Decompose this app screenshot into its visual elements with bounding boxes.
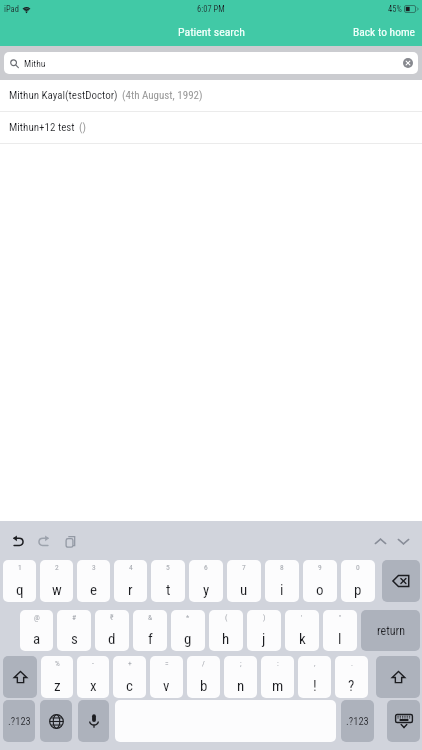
staticText: p <box>354 581 362 599</box>
staticText: Mithu <box>24 58 46 69</box>
staticText: 6:07 PM <box>197 4 225 14</box>
staticText: iPad <box>4 4 19 14</box>
staticText: # <box>72 613 77 622</box>
button[interactable]: ) <box>247 610 281 651</box>
staticText: () <box>79 121 86 134</box>
staticText: u <box>240 581 248 599</box>
staticText: ! <box>313 677 317 695</box>
staticText: 9 <box>318 563 322 572</box>
button[interactable]: Previous field <box>371 532 389 550</box>
staticText: + <box>128 659 132 668</box>
staticText: 2 <box>55 563 59 572</box>
button[interactable]: : <box>261 656 294 698</box>
staticText: ₹ <box>110 613 114 622</box>
button[interactable]: .?123 <box>3 700 35 742</box>
button[interactable]: 1 <box>3 560 36 602</box>
button[interactable]: - <box>77 656 109 698</box>
staticText: 7 <box>242 563 246 572</box>
staticText: Back to home <box>353 25 415 38</box>
button[interactable]: Clear search <box>403 58 413 68</box>
button[interactable]: 8 <box>265 560 299 602</box>
button[interactable]: + <box>113 656 146 698</box>
button[interactable]: 6 <box>189 560 223 602</box>
button[interactable]: " <box>323 610 357 651</box>
button[interactable]: ( <box>209 610 243 651</box>
staticText: r <box>128 581 133 599</box>
staticText: m <box>272 677 284 695</box>
staticText: s <box>71 630 78 648</box>
staticText: return <box>377 624 405 638</box>
staticText: 5 <box>166 563 170 572</box>
button[interactable]: 0 <box>341 560 375 602</box>
button[interactable]: 4 <box>114 560 147 602</box>
button[interactable]: 9 <box>303 560 337 602</box>
button[interactable]: , <box>298 656 331 698</box>
button[interactable]: Change keyboard language <box>40 700 72 742</box>
button[interactable]: @ <box>20 610 53 651</box>
button[interactable]: # <box>57 610 91 651</box>
button[interactable]: Mithun Kayal(testDoctor) <box>0 80 422 112</box>
button[interactable]: Voice input <box>78 700 109 742</box>
staticText: z <box>54 677 61 695</box>
button[interactable]: Paste <box>61 532 79 550</box>
button[interactable]: 2 <box>40 560 73 602</box>
staticText: ' <box>301 613 303 622</box>
staticText: e <box>90 581 98 599</box>
staticText: c <box>126 677 133 695</box>
staticText: g <box>184 630 192 648</box>
button[interactable]: / <box>187 656 220 698</box>
staticText: Mithun Kayal(testDoctor) <box>9 89 118 102</box>
staticText: w <box>52 581 62 599</box>
staticText: ( <box>225 613 228 622</box>
button[interactable]: Shift <box>376 656 420 698</box>
staticText: o <box>316 581 324 599</box>
button[interactable]: Redo <box>35 532 53 550</box>
staticText: k <box>299 630 306 648</box>
staticText: 8 <box>280 563 284 572</box>
button[interactable]: 7 <box>227 560 261 602</box>
button[interactable]: Backspace <box>382 560 420 602</box>
staticText: a <box>33 630 41 648</box>
button[interactable]: Hide keyboard <box>387 700 420 742</box>
staticText: 0 <box>356 563 360 572</box>
button[interactable]: ₹ <box>95 610 129 651</box>
staticText: q <box>16 581 24 599</box>
staticText: % <box>55 659 60 668</box>
button[interactable]: ' <box>285 610 319 651</box>
staticText: Mithun+12 test <box>9 121 75 134</box>
button[interactable]: 5 <box>151 560 185 602</box>
staticText: Patient search <box>178 25 245 39</box>
staticText: - <box>92 659 94 668</box>
staticText: d <box>108 630 116 648</box>
staticText: @ <box>34 613 40 622</box>
button[interactable]: & <box>133 610 167 651</box>
button[interactable]: = <box>150 656 183 698</box>
staticText: & <box>148 613 153 622</box>
staticText: f <box>148 630 153 648</box>
button[interactable]: Mithun+12 test <box>0 112 422 144</box>
button[interactable]: return <box>361 610 420 651</box>
staticText: , <box>314 659 316 668</box>
staticText: .?123 <box>8 715 31 727</box>
staticText: b <box>200 677 208 695</box>
button[interactable]: * <box>171 610 205 651</box>
button[interactable]: Next field <box>394 532 412 550</box>
button[interactable]: Back to home <box>346 20 422 43</box>
staticText: i <box>280 581 284 599</box>
staticText: y <box>203 581 210 599</box>
staticText: t <box>166 581 171 599</box>
button[interactable]: Shift <box>3 656 37 698</box>
staticText: l <box>338 630 342 648</box>
staticText: 4 <box>129 563 133 572</box>
button[interactable]: . <box>335 656 368 698</box>
button[interactable]: .?123 <box>341 700 374 742</box>
button[interactable]: Mithu <box>4 52 418 74</box>
staticText: ) <box>263 613 266 622</box>
button[interactable]: % <box>41 656 73 698</box>
button[interactable]: 3 <box>77 560 110 602</box>
button[interactable]: Undo <box>9 532 27 550</box>
staticText: 3 <box>92 563 96 572</box>
staticText: ? <box>348 677 355 695</box>
button[interactable]: ; <box>224 656 257 698</box>
